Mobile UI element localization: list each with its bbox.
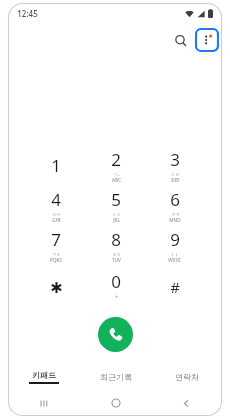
staticText: 12:45 bbox=[17, 8, 38, 19]
staticText: ㄱㄴ bbox=[112, 172, 121, 177]
staticText: ㅈㅊ bbox=[171, 212, 180, 217]
button[interactable]: 4 bbox=[26, 187, 86, 227]
button[interactable]: 9 bbox=[145, 227, 204, 267]
staticText: JKL bbox=[113, 217, 120, 223]
staticText: 2 bbox=[111, 148, 121, 171]
staticText: ㅅㅇ bbox=[112, 212, 121, 217]
staticText: # bbox=[170, 277, 180, 297]
button[interactable]: Recents bbox=[8, 394, 80, 412]
button[interactable]: 8 bbox=[86, 227, 145, 267]
staticText: ㅍㅎ bbox=[112, 252, 121, 257]
staticText: 1 bbox=[51, 154, 61, 177]
staticText: DEF bbox=[171, 177, 180, 183]
staticText: PQRS bbox=[50, 257, 62, 263]
button[interactable]: 7 bbox=[26, 227, 86, 267]
staticText: 0 bbox=[111, 270, 121, 293]
staticText: ABC bbox=[112, 177, 121, 183]
button[interactable]: 5 bbox=[86, 187, 145, 227]
staticText: 키패드 bbox=[32, 370, 56, 380]
staticText: 5 bbox=[111, 188, 121, 211]
button[interactable]: Back bbox=[151, 394, 222, 412]
button[interactable]: 0 bbox=[86, 267, 145, 307]
button[interactable]: More options bbox=[195, 28, 219, 52]
button[interactable]: ✱ bbox=[26, 267, 86, 307]
staticText: WXYZ bbox=[168, 257, 181, 263]
button[interactable]: 연락처 bbox=[151, 366, 222, 388]
button[interactable]: 6 bbox=[145, 187, 204, 227]
staticText: ㅋㅌ bbox=[52, 252, 61, 257]
staticText: 3 bbox=[170, 148, 180, 171]
staticText: ㅁㅂ bbox=[52, 212, 61, 217]
button[interactable]: Call bbox=[98, 317, 133, 352]
button[interactable]: # bbox=[145, 267, 204, 307]
staticText: 9 bbox=[170, 228, 180, 251]
button[interactable]: 1 bbox=[26, 147, 86, 187]
staticText: ✱ bbox=[50, 279, 63, 296]
staticText: MNO bbox=[169, 217, 181, 223]
button[interactable]: 2 bbox=[86, 147, 145, 187]
staticText: 8 bbox=[111, 228, 121, 251]
staticText: GHI bbox=[52, 217, 61, 223]
staticText: ㄷㄹ bbox=[171, 172, 180, 177]
button[interactable]: Home bbox=[80, 394, 151, 412]
button[interactable]: 키패드 bbox=[8, 366, 80, 388]
staticText: TUV bbox=[112, 257, 121, 263]
staticText: 6 bbox=[170, 188, 180, 211]
staticText: 4 bbox=[51, 188, 61, 211]
staticText: 최근기록 bbox=[100, 372, 132, 382]
staticText: + bbox=[115, 294, 118, 300]
button[interactable]: 최근기록 bbox=[80, 366, 151, 388]
staticText: ㅏㅓ bbox=[170, 252, 179, 257]
button[interactable]: 3 bbox=[145, 147, 204, 187]
staticText: 연락처 bbox=[175, 372, 199, 382]
staticText: 7 bbox=[51, 228, 61, 251]
button[interactable]: Search bbox=[167, 27, 193, 53]
